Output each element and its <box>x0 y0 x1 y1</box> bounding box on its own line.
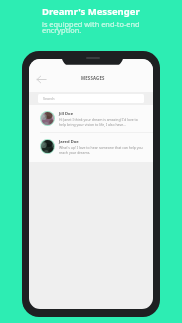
button[interactable]: Back <box>35 73 48 86</box>
staticText: Jared Doe <box>59 139 79 145</box>
staticText: is equipped with end-to-end encryption. <box>42 19 140 36</box>
button[interactable]: Search <box>38 94 144 103</box>
staticText: What's up! I love to hear someone that c… <box>59 145 143 155</box>
staticText: Hi Janet I think your dream is amazing! … <box>59 117 138 127</box>
staticText: Dreamr's Messenger <box>42 5 140 18</box>
staticText: MESSAGES <box>81 75 105 81</box>
staticText: Jill Doe <box>59 111 74 117</box>
button[interactable]: Jared Doe <box>29 133 153 160</box>
button[interactable]: Jill Doe <box>29 105 153 132</box>
staticText: Search <box>43 96 55 101</box>
